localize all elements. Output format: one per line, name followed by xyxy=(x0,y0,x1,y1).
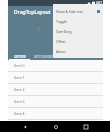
button[interactable]: Recents xyxy=(80,121,91,132)
button[interactable]: Back xyxy=(19,121,30,132)
button[interactable]: OverDrag xyxy=(53,26,103,36)
staticText: Item 0 xyxy=(14,63,25,68)
staticText: Item 5 xyxy=(14,122,25,127)
button[interactable]: Item 3 xyxy=(8,96,103,108)
button[interactable]: Show & hide icon xyxy=(53,6,103,16)
button[interactable]: Item 2 xyxy=(8,84,103,96)
staticText: Item 4 xyxy=(14,111,25,116)
button[interactable]: LISTVIEW xyxy=(8,53,31,60)
staticText: Item 3 xyxy=(14,99,25,104)
button[interactable]: Item 0 xyxy=(8,60,103,72)
staticText: GRIDVIEW xyxy=(61,55,74,59)
staticText: Item 2 xyxy=(14,87,25,92)
staticText: DragTopLayout xyxy=(14,9,51,16)
button[interactable]: SCRO xyxy=(79,53,103,60)
button[interactable]: Home xyxy=(50,121,61,132)
staticText: Item 1 xyxy=(14,75,25,80)
button[interactable]: Toggle xyxy=(53,16,103,26)
button[interactable]: About xyxy=(53,46,103,56)
staticText: 4:07 xyxy=(96,1,102,5)
staticText: SCRO xyxy=(88,55,95,59)
staticText: RECYCLERVIEW xyxy=(34,55,53,59)
button[interactable]: Item 1 xyxy=(8,72,103,84)
staticText: Toggle xyxy=(56,19,67,24)
staticText: OverDrag xyxy=(56,29,72,34)
staticText: Show & hide icon xyxy=(56,9,84,14)
button[interactable]: Offset xyxy=(53,36,103,46)
staticText: ↑ xyxy=(36,26,42,33)
button[interactable]: GRIDVIEW xyxy=(55,53,79,60)
button[interactable]: Item 4 xyxy=(8,108,103,120)
staticText: About xyxy=(56,49,66,54)
staticText: Offset xyxy=(56,39,66,44)
button[interactable]: RECYCLERVIEW xyxy=(31,53,55,60)
staticText: LISTVIEW xyxy=(14,55,26,59)
